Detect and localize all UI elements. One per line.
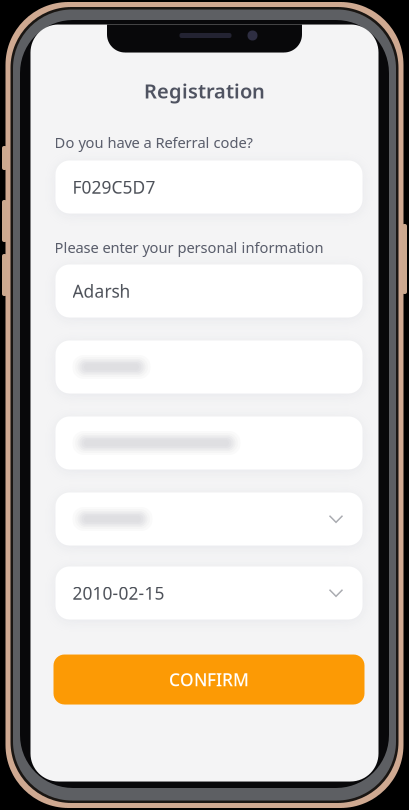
staticText: Please enter your personal information: [54, 237, 323, 257]
button[interactable]: [55, 340, 362, 393]
button[interactable]: Adarsh: [55, 264, 362, 317]
staticText: Adarsh: [72, 279, 130, 302]
staticText: F029C5D7: [72, 175, 155, 198]
staticText: Do you have a Referral code?: [54, 132, 252, 152]
staticText: CONFIRM: [169, 668, 249, 691]
button[interactable]: 2010-02-15: [55, 566, 362, 619]
button[interactable]: [55, 492, 362, 545]
button[interactable]: CONFIRM: [53, 654, 364, 704]
staticText: Registration: [144, 77, 265, 104]
button[interactable]: F029C5D7: [55, 160, 362, 213]
button[interactable]: [55, 416, 362, 469]
staticText: 2010-02-15: [72, 581, 164, 604]
